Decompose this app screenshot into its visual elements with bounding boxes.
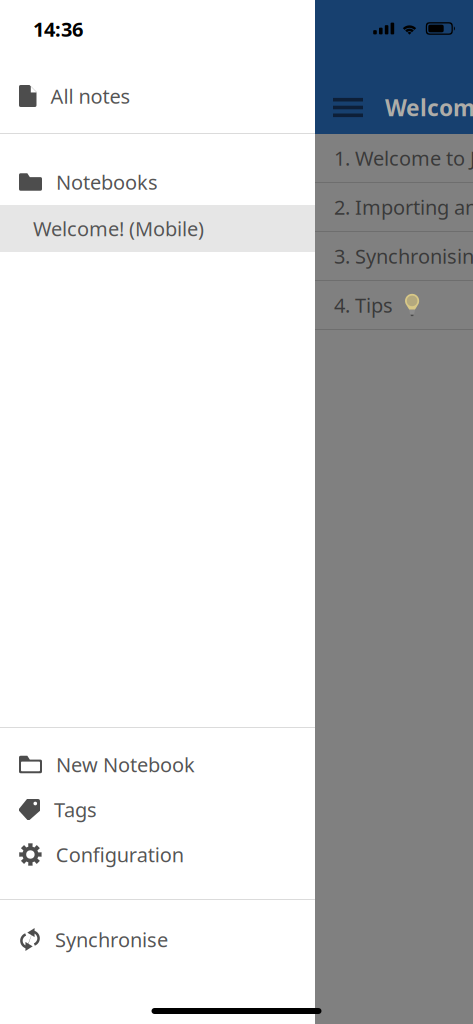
button[interactable]: All notes [0, 73, 315, 119]
staticText: Notebooks [56, 169, 158, 195]
button[interactable]: Notebooks [0, 159, 315, 205]
staticText: 14:36 [33, 16, 83, 42]
button[interactable]: 2. Importing and exporting notes [315, 183, 473, 232]
button[interactable]: Show menu [324, 88, 372, 126]
staticText: Synchronise [55, 926, 168, 953]
button[interactable]: New Notebook [0, 742, 315, 787]
staticText: 3. Synchronising your notes [334, 243, 473, 269]
button[interactable]: 3. Synchronising your notes [315, 232, 473, 281]
staticText: All notes [50, 83, 130, 109]
staticText: 4. Tips [334, 292, 393, 318]
staticText: Welcome! (Mobile) [33, 215, 204, 242]
button[interactable]: Synchronise [0, 917, 315, 962]
staticText: Welcome! (Mobile) [385, 92, 473, 122]
button[interactable]: Tags [0, 787, 315, 832]
staticText: New Notebook [56, 751, 195, 778]
staticText: Configuration [56, 841, 184, 868]
button[interactable]: Welcome! (Mobile) [0, 205, 315, 252]
staticText: 1. Welcome to Joplin! [334, 145, 473, 171]
button[interactable]: 1. Welcome to Joplin! [315, 134, 473, 183]
button[interactable]: 4. Tips [315, 281, 473, 330]
staticText: Tags [54, 796, 97, 823]
button[interactable]: Configuration [0, 832, 315, 877]
staticText: 2. Importing and exporting notes [334, 194, 473, 220]
